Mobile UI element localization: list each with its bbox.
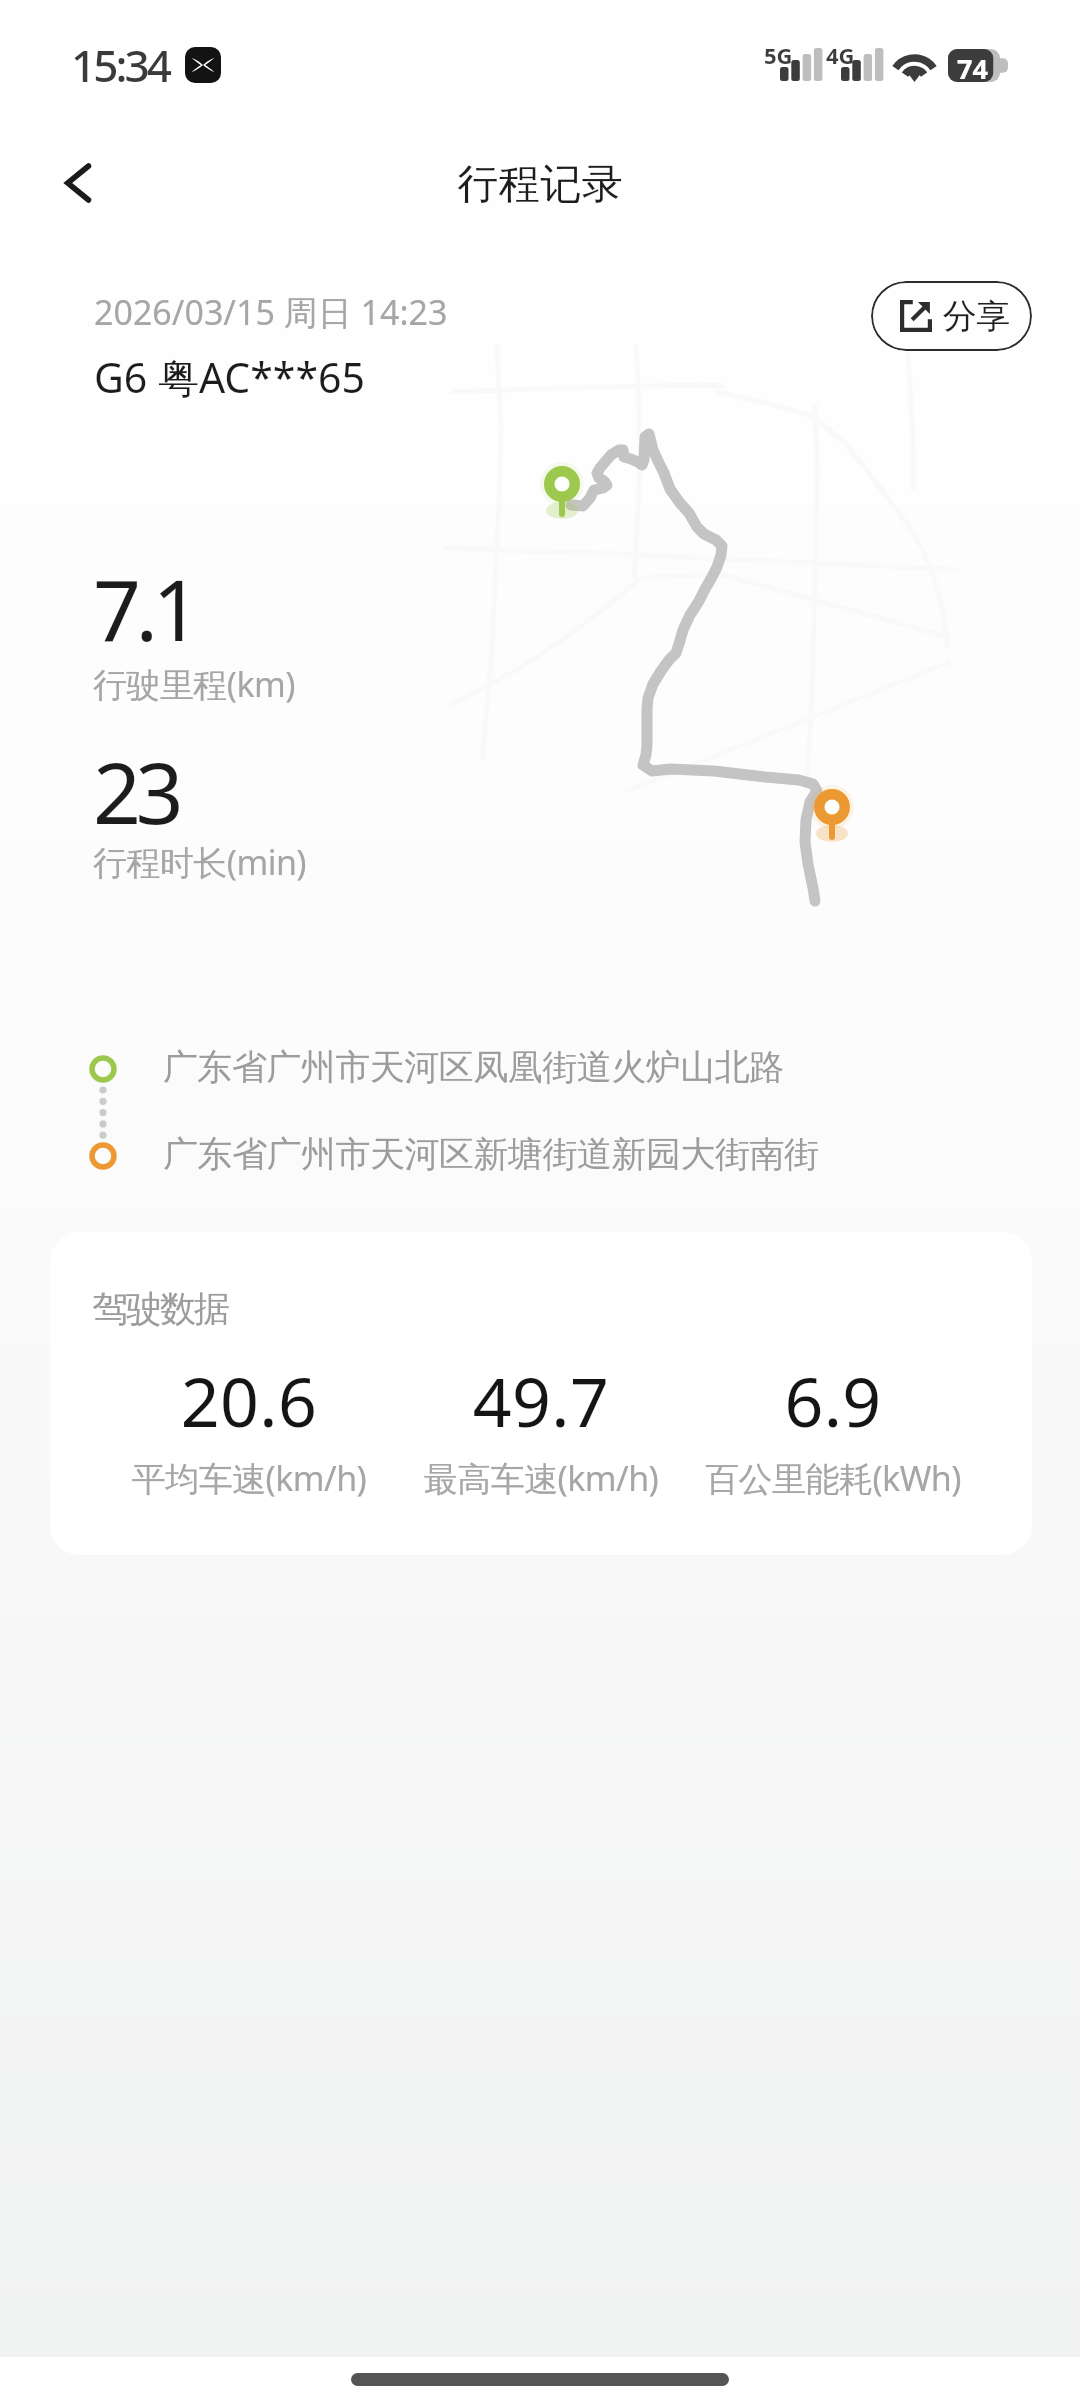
staticText: 15:34 <box>71 35 170 95</box>
button[interactable]: 分享 <box>871 281 1032 351</box>
staticText: 广东省广州市天河区新塘街道新园大街南街 <box>163 1132 819 1176</box>
staticText: 平均车速(km/h) <box>50 1455 449 1501</box>
staticText: 广东省广州市天河区凤凰街道火炉山北路 <box>163 1045 784 1089</box>
staticText: 2026/03/15 周日 14:23 <box>94 289 448 335</box>
staticText: 分享 <box>943 295 1010 338</box>
button[interactable]: 广东省广州市天河区凤凰街道火炉山北路 <box>80 1036 860 1098</box>
staticText: 7.1 <box>93 551 196 665</box>
staticText: 20.6 <box>50 1354 449 1447</box>
button[interactable]: 广东省广州市天河区新塘街道新园大街南街 <box>80 1123 860 1185</box>
button[interactable]: 驾驶数据 <box>50 1232 1032 1555</box>
staticText: 4G <box>826 40 855 70</box>
staticText: 6.9 <box>633 1354 1032 1447</box>
staticText: 行程记录 <box>457 159 623 211</box>
staticText: 百公里能耗(kWh) <box>633 1455 1032 1501</box>
staticText: 行程时长(min) <box>93 839 307 885</box>
staticText: 最高车速(km/h) <box>341 1455 741 1501</box>
staticText: 23 <box>93 734 179 848</box>
staticText: 行驶里程(km) <box>93 661 295 707</box>
button[interactable]: 返回 <box>32 137 124 229</box>
staticText: 49.7 <box>341 1354 741 1447</box>
staticText: 驾驶数据 <box>93 1286 229 1331</box>
staticText: G6 粤AC***65 <box>94 349 365 405</box>
staticText: 74 <box>957 50 988 87</box>
staticText: 5G <box>764 40 793 70</box>
